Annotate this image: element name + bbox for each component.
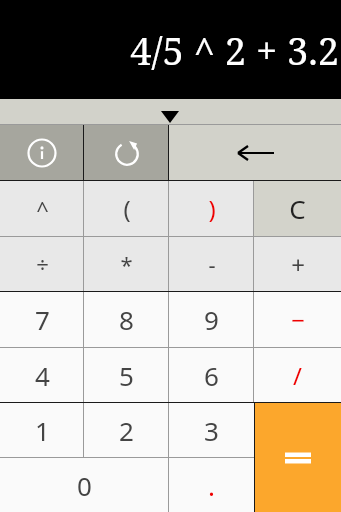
button[interactable]: 0 [0, 458, 169, 512]
staticText: − [291, 303, 305, 336]
staticText: ( [123, 192, 131, 225]
button[interactable]: 4 [0, 348, 84, 402]
staticText: ) [208, 192, 216, 225]
button[interactable]: 8 [84, 292, 169, 347]
button[interactable]: 9 [169, 292, 254, 347]
staticText: * [120, 249, 133, 279]
staticText: 1 [35, 413, 50, 448]
staticText: C [289, 191, 306, 226]
button[interactable]: 2 [84, 403, 169, 457]
button[interactable]: + [254, 237, 341, 291]
button[interactable]: ( [84, 181, 169, 236]
staticText: + [291, 248, 305, 281]
button[interactable]: ) [169, 181, 254, 236]
staticText: ÷ [36, 249, 49, 279]
staticText: 4 [35, 358, 50, 393]
staticText: 3 [204, 413, 219, 448]
button[interactable]: 3 [169, 403, 254, 457]
button[interactable]: = [255, 403, 341, 512]
staticText: / [293, 359, 302, 392]
button[interactable]: * [84, 237, 169, 291]
staticText: 4/5 ^ 2 + 3.2 [130, 24, 339, 76]
staticText: 7 [35, 302, 50, 337]
staticText: 5 [119, 358, 134, 393]
staticText: - [208, 249, 216, 279]
button[interactable]: Backspace [169, 125, 341, 180]
button[interactable]: / [254, 348, 341, 402]
button[interactable]: 5 [84, 348, 169, 402]
button[interactable]: - [169, 237, 254, 291]
button[interactable]: ^ [0, 181, 84, 236]
staticText: 8 [119, 302, 134, 337]
button[interactable]: Info [0, 125, 84, 180]
button[interactable]: 7 [0, 292, 84, 347]
staticText: 2 [119, 413, 134, 448]
button[interactable]: 1 [0, 403, 84, 457]
staticText: . [208, 468, 215, 503]
button[interactable]: 6 [169, 348, 254, 402]
button[interactable]: C [254, 181, 341, 236]
button[interactable]: . [169, 458, 254, 512]
button[interactable]: ÷ [0, 237, 84, 291]
staticText: 6 [204, 358, 219, 393]
staticText: 0 [77, 468, 92, 503]
staticText: 9 [204, 302, 219, 337]
staticText: ^ [36, 194, 49, 224]
button[interactable]: − [254, 292, 341, 347]
button[interactable]: Reset [84, 125, 169, 180]
